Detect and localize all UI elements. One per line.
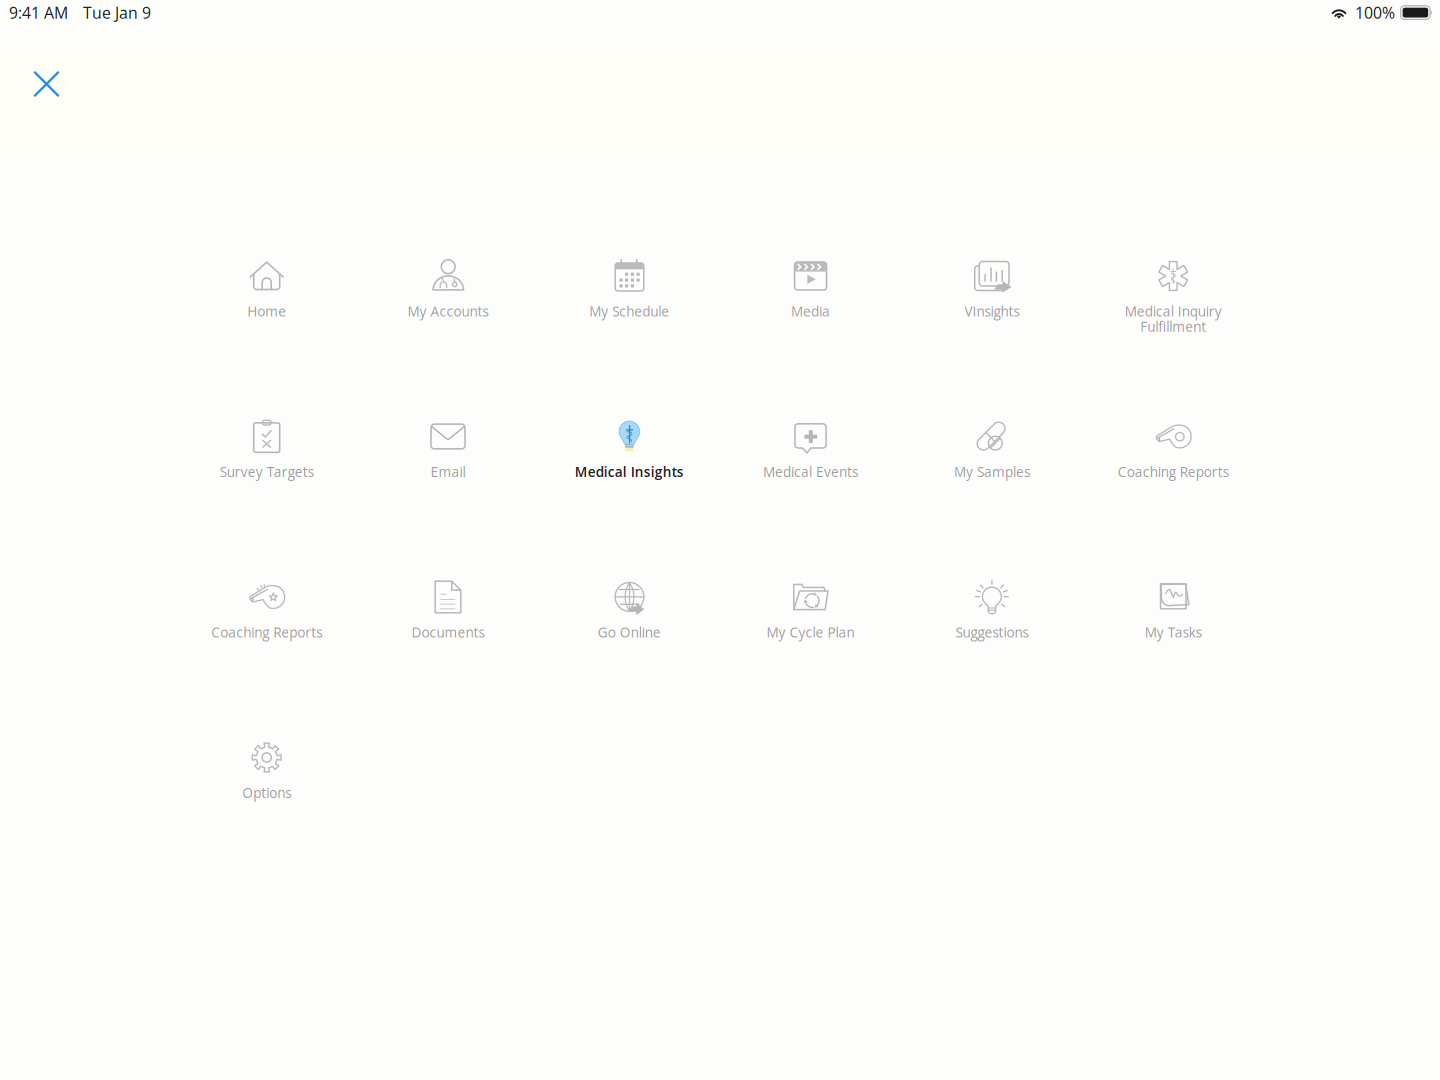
button[interactable]: Close bbox=[18, 56, 74, 112]
button[interactable]: Email bbox=[360, 402, 536, 502]
staticText: My Schedule bbox=[589, 302, 669, 320]
button[interactable]: Coaching Reports bbox=[1085, 402, 1261, 502]
button[interactable]: Options bbox=[179, 723, 355, 823]
staticText: Medical Events bbox=[763, 462, 858, 481]
staticText: My Tasks bbox=[1145, 623, 1202, 641]
button[interactable]: Media bbox=[723, 242, 899, 342]
staticText: Go Online bbox=[598, 623, 661, 641]
button[interactable]: Home bbox=[179, 242, 355, 342]
button[interactable]: My Schedule bbox=[541, 242, 717, 342]
button[interactable]: Medical Insights bbox=[541, 402, 717, 502]
button[interactable]: My Samples bbox=[904, 402, 1080, 502]
staticText: My Samples bbox=[954, 462, 1030, 481]
staticText: Email bbox=[430, 462, 465, 481]
staticText: 100% bbox=[1355, 2, 1395, 23]
staticText: Medical Insights bbox=[575, 462, 684, 481]
staticText: My Accounts bbox=[407, 302, 488, 320]
staticText: Documents bbox=[411, 623, 484, 641]
staticText: Medical Inquiry bbox=[1125, 302, 1222, 320]
staticText: Tue Jan 9 bbox=[83, 2, 151, 23]
staticText: Fulfillment bbox=[1140, 317, 1206, 336]
staticText: 9:41 AM bbox=[9, 2, 68, 23]
button[interactable]: Coaching Reports bbox=[179, 563, 355, 663]
staticText: Media bbox=[791, 302, 830, 320]
staticText: Options bbox=[242, 783, 291, 802]
staticText: Home bbox=[247, 302, 286, 320]
staticText: Survey Targets bbox=[220, 462, 314, 481]
button[interactable]: Medical Inquiry bbox=[1085, 242, 1261, 342]
button[interactable]: Suggestions bbox=[904, 563, 1080, 663]
button[interactable]: VInsights bbox=[904, 242, 1080, 342]
button[interactable]: Survey Targets bbox=[179, 402, 355, 502]
button[interactable]: Documents bbox=[360, 563, 536, 663]
button[interactable]: My Cycle Plan bbox=[723, 563, 899, 663]
button[interactable]: My Accounts bbox=[360, 242, 536, 342]
staticText: Coaching Reports bbox=[211, 623, 322, 641]
staticText: My Cycle Plan bbox=[767, 623, 855, 641]
staticText: Suggestions bbox=[955, 623, 1028, 641]
button[interactable]: Go Online bbox=[541, 563, 717, 663]
button[interactable]: Medical Events bbox=[723, 402, 899, 502]
staticText: Coaching Reports bbox=[1118, 462, 1229, 481]
staticText: VInsights bbox=[964, 302, 1019, 320]
button[interactable]: My Tasks bbox=[1085, 563, 1261, 663]
